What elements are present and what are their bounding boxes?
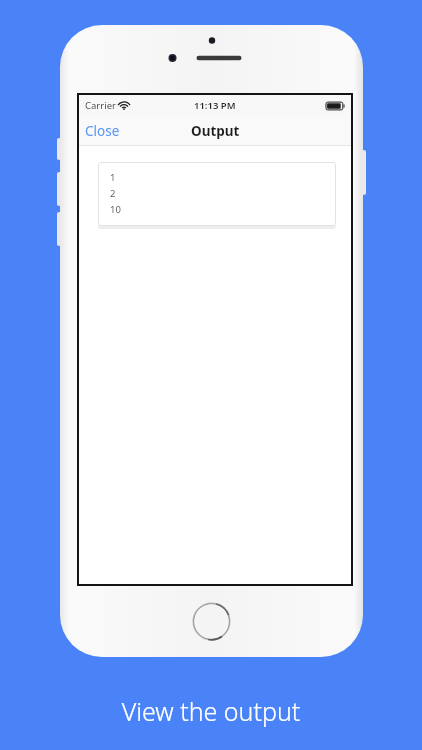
staticText: 11:13 PM [194, 99, 236, 112]
staticText: Output [191, 122, 240, 140]
staticText: Carrier [85, 99, 116, 112]
staticText: Close [85, 122, 120, 140]
button[interactable]: 1 [98, 162, 336, 226]
staticText: 2 [110, 187, 116, 200]
staticText: 1 [110, 171, 116, 184]
button[interactable]: Close [79, 117, 126, 145]
staticText: 10 [110, 203, 121, 216]
staticText: View the output [0, 694, 422, 728]
